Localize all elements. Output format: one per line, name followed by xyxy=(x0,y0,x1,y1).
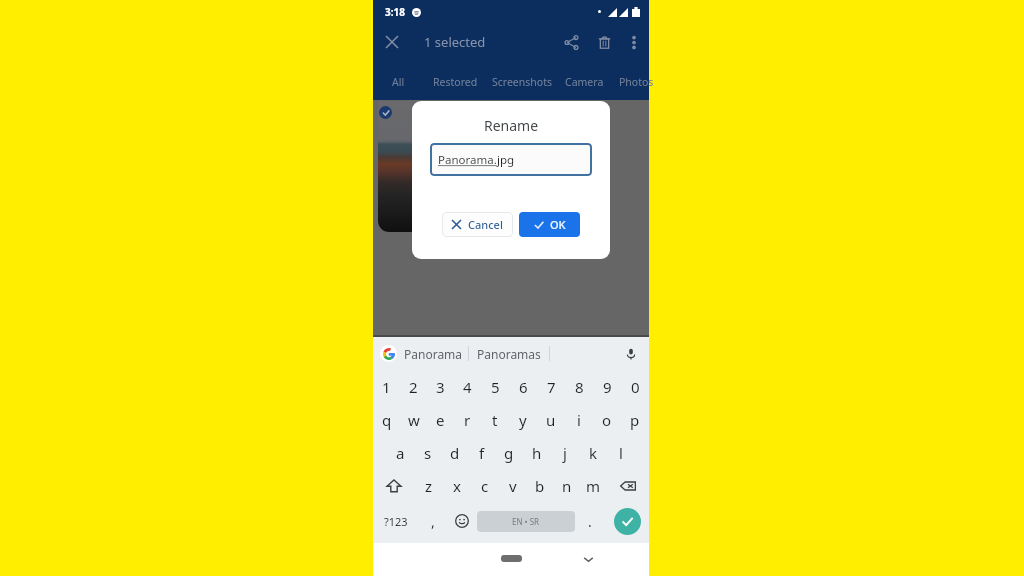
button[interactable]: OK xyxy=(519,212,580,237)
button[interactable]: Delete xyxy=(590,28,618,56)
button[interactable]: h xyxy=(523,436,551,469)
button[interactable]: 2 xyxy=(400,370,427,403)
button[interactable]: 3 xyxy=(427,370,454,403)
button[interactable]: w xyxy=(400,403,427,436)
staticText: 3 xyxy=(436,377,445,397)
staticText: Panorama. xyxy=(438,152,497,168)
button[interactable]: Cancel xyxy=(442,212,513,237)
staticText: Restored xyxy=(433,75,478,89)
staticText: j xyxy=(563,443,567,463)
staticText: . xyxy=(588,512,592,531)
button[interactable]: Google xyxy=(380,345,397,362)
button[interactable]: c xyxy=(471,469,499,502)
staticText: i xyxy=(577,410,581,430)
button[interactable]: . xyxy=(575,502,605,540)
button[interactable]: 8 xyxy=(565,370,593,403)
button[interactable]: i xyxy=(565,403,593,436)
button[interactable]: o xyxy=(593,403,621,436)
button[interactable]: 6 xyxy=(509,370,537,403)
button[interactable]: Shift xyxy=(373,469,415,502)
button[interactable]: Backspace xyxy=(607,469,649,502)
button[interactable]: 7 xyxy=(537,370,565,403)
button[interactable]: k xyxy=(579,436,607,469)
button[interactable]: Voice input xyxy=(621,344,641,364)
button[interactable]: g xyxy=(495,436,523,469)
button[interactable]: t xyxy=(481,403,509,436)
button[interactable]: 5 xyxy=(481,370,509,403)
button[interactable]: 1 xyxy=(373,370,400,403)
button[interactable]: y xyxy=(509,403,537,436)
staticText: l xyxy=(619,443,623,463)
staticText: w xyxy=(408,410,420,430)
button[interactable]: 0 xyxy=(621,370,649,403)
button[interactable]: 4 xyxy=(454,370,481,403)
staticText: k xyxy=(589,443,598,463)
button[interactable]: Screenshots xyxy=(483,68,561,96)
button[interactable]: Panorama xyxy=(399,337,467,370)
button[interactable]: e xyxy=(427,403,454,436)
staticText: e xyxy=(436,410,445,430)
button[interactable]: x xyxy=(443,469,471,502)
button[interactable]: f xyxy=(468,436,495,469)
button[interactable]: v xyxy=(499,469,526,502)
button[interactable]: Close xyxy=(379,29,405,55)
button[interactable]: a xyxy=(387,436,414,469)
staticText: 8 xyxy=(575,377,584,397)
button[interactable]: Emoji xyxy=(446,502,477,540)
button[interactable]: d xyxy=(441,436,468,469)
button[interactable]: u xyxy=(537,403,565,436)
staticText: Panorama xyxy=(404,346,463,362)
button[interactable] xyxy=(378,101,426,232)
button[interactable]: p xyxy=(621,403,649,436)
staticText: Screenshots xyxy=(492,75,552,89)
staticText: s xyxy=(424,443,432,463)
button[interactable]: EN • SR xyxy=(477,511,575,532)
staticText: Panoramas xyxy=(477,346,541,362)
button[interactable]: Hide keyboard xyxy=(578,549,598,569)
staticText: Camera xyxy=(565,75,604,89)
button[interactable]: Enter xyxy=(605,502,649,540)
staticText: q xyxy=(382,410,392,430)
staticText: v xyxy=(509,476,517,496)
button[interactable]: Home xyxy=(501,555,522,562)
staticText: r xyxy=(464,410,471,430)
staticText: jpg xyxy=(497,152,515,168)
button[interactable]: 9 xyxy=(593,370,621,403)
staticText: Rename xyxy=(484,116,539,135)
staticText: c xyxy=(481,476,489,496)
button[interactable]: Panorama. xyxy=(430,143,592,176)
button[interactable]: l xyxy=(607,436,635,469)
button[interactable]: Share xyxy=(557,28,585,56)
button[interactable]: ?123 xyxy=(373,502,419,540)
staticText: g xyxy=(504,443,514,463)
staticText: a xyxy=(396,443,405,463)
button[interactable]: b xyxy=(526,469,553,502)
button[interactable]: m xyxy=(580,469,607,502)
button[interactable]: z xyxy=(415,469,443,502)
staticText: f xyxy=(479,443,485,463)
staticText: o xyxy=(602,410,612,430)
button[interactable]: q xyxy=(373,403,400,436)
button[interactable]: s xyxy=(414,436,441,469)
staticText: h xyxy=(532,443,542,463)
staticText: 1 selected xyxy=(424,33,486,51)
staticText: d xyxy=(450,443,460,463)
button[interactable]: n xyxy=(553,469,580,502)
button[interactable]: More options xyxy=(622,30,646,54)
staticText: 9 xyxy=(603,377,612,397)
staticText: t xyxy=(492,410,498,430)
button[interactable]: r xyxy=(454,403,481,436)
button[interactable]: Restored xyxy=(424,68,487,96)
button[interactable]: Camera xyxy=(556,68,613,96)
button[interactable]: , xyxy=(419,502,446,540)
staticText: u xyxy=(546,410,556,430)
button[interactable]: Panoramas xyxy=(469,337,549,370)
button[interactable]: j xyxy=(551,436,579,469)
button[interactable]: Photos xyxy=(610,68,663,96)
staticText: EN • SR xyxy=(512,516,540,527)
staticText: 3:18 xyxy=(385,5,405,19)
button[interactable]: All xyxy=(383,68,414,96)
staticText: 7 xyxy=(547,377,556,397)
staticText: OK xyxy=(550,217,566,232)
staticText: n xyxy=(562,476,572,496)
